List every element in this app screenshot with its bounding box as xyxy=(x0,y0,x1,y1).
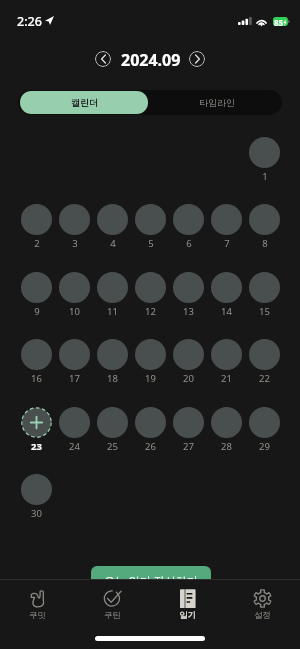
button[interactable]: 3 xyxy=(55,204,93,252)
button[interactable]: 28 xyxy=(207,407,245,455)
staticText: 13 xyxy=(183,305,194,318)
staticText: 23 xyxy=(31,440,42,453)
staticText: 24 xyxy=(69,440,80,453)
staticText: 3 xyxy=(72,237,78,250)
staticText: 9 xyxy=(34,305,40,318)
staticText: 27 xyxy=(183,440,194,453)
button[interactable]: 15 xyxy=(245,272,283,320)
staticText: 12 xyxy=(145,305,156,318)
staticText: 16 xyxy=(31,372,42,385)
staticText: 28 xyxy=(221,440,232,453)
button[interactable]: 쿠틴 xyxy=(75,580,150,625)
staticText: 15 xyxy=(259,305,270,318)
staticText: 26 xyxy=(145,440,156,453)
staticText: 2024.09 xyxy=(121,49,181,69)
staticText: 22 xyxy=(259,372,270,385)
staticText: 20 xyxy=(183,372,194,385)
button[interactable]: 20 xyxy=(169,339,207,387)
button[interactable]: 19 xyxy=(131,339,169,387)
button[interactable]: 21 xyxy=(207,339,245,387)
staticText: 1 xyxy=(262,170,268,183)
staticText: 4 xyxy=(110,237,116,250)
staticText: 10 xyxy=(69,305,80,318)
button[interactable]: 설정 xyxy=(225,580,300,625)
button[interactable]: 13 xyxy=(169,272,207,320)
staticText: 7 xyxy=(224,237,230,250)
button[interactable]: 17 xyxy=(55,339,93,387)
button[interactable]: 4 xyxy=(93,204,131,252)
button[interactable]: 타임라인 xyxy=(151,90,282,115)
staticText: 타임라인 xyxy=(199,97,235,108)
staticText: 30 xyxy=(31,507,42,520)
button[interactable]: 7 xyxy=(207,204,245,252)
staticText: 캘린더 xyxy=(71,97,98,108)
staticText: 2:26 xyxy=(17,13,42,30)
staticText: 2 xyxy=(34,237,40,250)
staticText: 오늘 일기 작성하기 xyxy=(104,573,198,588)
button[interactable]: 29 xyxy=(245,407,283,455)
button[interactable]: 30 xyxy=(17,474,55,522)
button[interactable]: 12 xyxy=(131,272,169,320)
staticText: 85 xyxy=(274,17,284,28)
staticText: 21 xyxy=(221,372,232,385)
button[interactable]: Previous month xyxy=(95,51,111,67)
button[interactable]: 22 xyxy=(245,339,283,387)
button[interactable]: 27 xyxy=(169,407,207,455)
staticText: 5 xyxy=(148,237,154,250)
button[interactable]: 14 xyxy=(207,272,245,320)
button[interactable]: 18 xyxy=(93,339,131,387)
staticText: 11 xyxy=(107,305,118,318)
button[interactable]: 일기 xyxy=(150,580,225,625)
staticText: 6 xyxy=(186,237,192,250)
staticText: 17 xyxy=(69,372,80,385)
button[interactable]: 26 xyxy=(131,407,169,455)
staticText: 19 xyxy=(145,372,156,385)
staticText: 18 xyxy=(107,372,118,385)
button[interactable]: 1 xyxy=(245,137,283,185)
button[interactable]: 5 xyxy=(131,204,169,252)
button[interactable]: Next month xyxy=(189,51,205,67)
button[interactable]: 25 xyxy=(93,407,131,455)
button[interactable]: 2 xyxy=(17,204,55,252)
button[interactable]: 8 xyxy=(245,204,283,252)
staticText: 8 xyxy=(262,237,268,250)
staticText: 25 xyxy=(107,440,118,453)
staticText: 설정 xyxy=(254,610,271,621)
button[interactable]: 9 xyxy=(17,272,55,320)
button[interactable]: 24 xyxy=(55,407,93,455)
button[interactable]: 16 xyxy=(17,339,55,387)
button[interactable]: 11 xyxy=(93,272,131,320)
staticText: 쿠틴 xyxy=(104,610,121,621)
button[interactable]: 6 xyxy=(169,204,207,252)
button[interactable]: 캘린더 xyxy=(20,91,148,114)
staticText: 일기 xyxy=(179,610,196,621)
staticText: 쿠밋 xyxy=(29,610,46,621)
staticText: 29 xyxy=(259,440,270,453)
button[interactable]: 오늘 일기 작성하기 xyxy=(91,566,211,602)
staticText: 14 xyxy=(221,305,232,318)
button[interactable]: 10 xyxy=(55,272,93,320)
button[interactable]: 쿠밋 xyxy=(0,580,75,625)
button[interactable]: 23 xyxy=(17,407,55,455)
